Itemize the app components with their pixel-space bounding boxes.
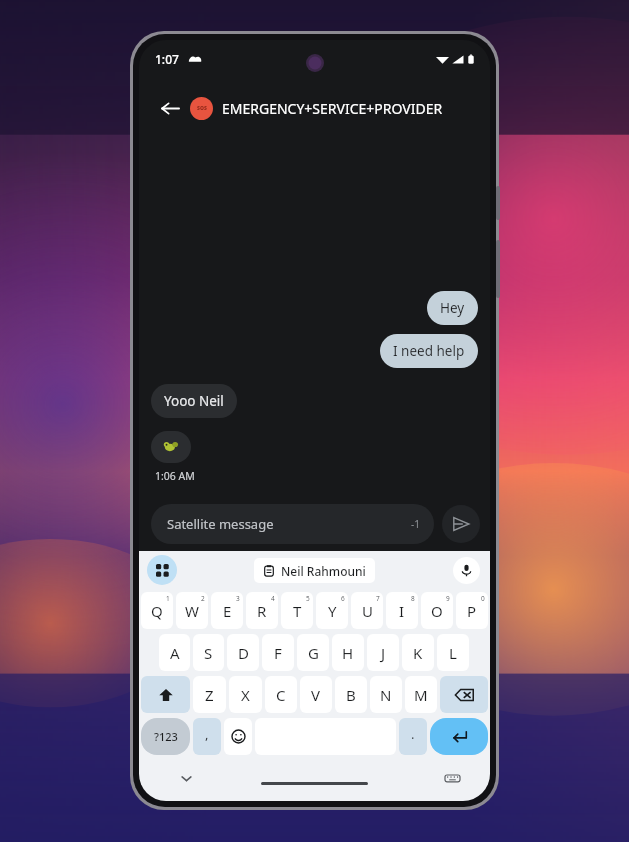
staticText: X: [241, 685, 250, 705]
button[interactable]: Yooo Neil: [151, 384, 237, 418]
staticText: 0: [481, 594, 485, 603]
staticText: M: [414, 685, 428, 705]
staticText: P: [467, 601, 477, 621]
staticText: 9: [446, 594, 450, 603]
button[interactable]: I: [386, 592, 418, 629]
staticText: F: [274, 643, 282, 663]
staticText: J: [381, 643, 386, 663]
button[interactable]: P: [456, 592, 488, 629]
button[interactable]: Emoji: [224, 718, 252, 755]
button[interactable]: T: [281, 592, 313, 629]
button[interactable]: Send: [442, 505, 480, 543]
staticText: ,: [205, 725, 209, 743]
button[interactable]: H: [332, 634, 364, 671]
staticText: SOS: [197, 105, 207, 112]
staticText: Z: [205, 685, 214, 705]
button[interactable]: Change keyboard: [440, 766, 464, 790]
button[interactable]: Q: [141, 592, 173, 629]
staticText: Y: [328, 601, 337, 621]
button[interactable]: R: [246, 592, 278, 629]
staticText: G: [308, 643, 319, 663]
button[interactable]: Neil Rahmouni: [254, 558, 375, 583]
staticText: E: [223, 601, 232, 621]
staticText: 5: [306, 594, 310, 603]
staticText: -1: [411, 517, 420, 531]
staticText: I: [399, 601, 405, 621]
staticText: Neil Rahmouni: [281, 563, 366, 579]
staticText: T: [293, 601, 302, 621]
staticText: .: [411, 725, 415, 743]
staticText: I need help: [393, 342, 465, 360]
button[interactable]: D: [227, 634, 259, 671]
button[interactable]: I need help: [380, 334, 478, 368]
staticText: 7: [376, 594, 380, 603]
staticText: 8: [411, 594, 415, 603]
button[interactable]: [151, 431, 191, 463]
staticText: EMERGENCY+SERVICE+PROVIDER: [222, 99, 443, 118]
button[interactable]: B: [335, 676, 367, 713]
button[interactable]: J: [367, 634, 399, 671]
staticText: Hey: [440, 299, 465, 317]
staticText: U: [362, 601, 373, 621]
staticText: 6: [341, 594, 345, 603]
button[interactable]: L: [437, 634, 469, 671]
staticText: 1:07: [155, 51, 179, 67]
button[interactable]: Backspace: [440, 676, 488, 713]
button[interactable]: A: [159, 634, 190, 671]
staticText: V: [311, 685, 321, 705]
button[interactable]: U: [351, 592, 383, 629]
button[interactable]: V: [300, 676, 332, 713]
button[interactable]: X: [229, 676, 262, 713]
staticText: W: [185, 601, 199, 621]
staticText: H: [342, 643, 354, 663]
staticText: S: [204, 643, 213, 663]
button[interactable]: M: [405, 676, 437, 713]
staticText: C: [276, 685, 286, 705]
staticText: L: [449, 643, 457, 663]
button[interactable]: Shift: [141, 676, 190, 713]
button[interactable]: Enter: [430, 718, 488, 755]
staticText: Yooo Neil: [164, 392, 224, 410]
staticText: B: [346, 685, 356, 705]
button[interactable]: Apps: [147, 555, 177, 585]
button[interactable]: N: [370, 676, 402, 713]
button[interactable]: S: [193, 634, 224, 671]
button[interactable]: C: [265, 676, 297, 713]
staticText: O: [431, 601, 443, 621]
staticText: K: [413, 643, 423, 663]
button[interactable]: Voice input: [453, 557, 480, 584]
button[interactable]: .: [399, 718, 427, 755]
button[interactable]: ,: [193, 718, 221, 755]
button[interactable]: W: [176, 592, 208, 629]
button[interactable]: E: [211, 592, 243, 629]
staticText: 3: [236, 594, 240, 603]
button[interactable]: Hey: [427, 291, 478, 325]
staticText: ?123: [154, 729, 178, 744]
button[interactable]: G: [297, 634, 329, 671]
button[interactable]: O: [421, 592, 453, 629]
staticText: 1:06 AM: [155, 469, 195, 483]
button[interactable]: F: [262, 634, 294, 671]
button[interactable]: Back: [153, 91, 187, 125]
button[interactable]: Satellite message: [151, 504, 434, 544]
button[interactable]: Z: [193, 676, 226, 713]
button[interactable]: ?123: [141, 718, 190, 755]
staticText: 4: [271, 594, 275, 603]
button[interactable]: Hide keyboard: [173, 765, 199, 791]
staticText: Q: [151, 601, 163, 621]
staticText: R: [257, 601, 267, 621]
staticText: D: [238, 643, 249, 663]
button[interactable]: K: [402, 634, 434, 671]
staticText: A: [170, 643, 180, 663]
staticText: N: [380, 685, 392, 705]
staticText: 1: [166, 594, 170, 603]
button[interactable]: Y: [316, 592, 348, 629]
staticText: Satellite message: [167, 515, 411, 533]
staticText: 2: [201, 594, 205, 603]
